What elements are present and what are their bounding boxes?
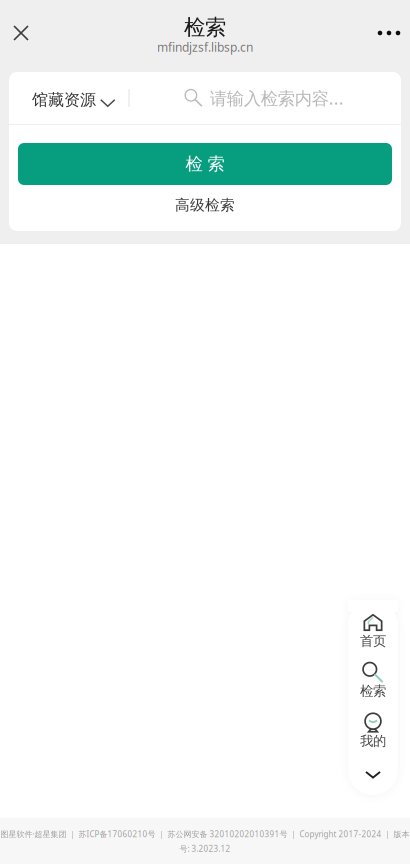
button[interactable]: 高级检索 <box>9 190 401 220</box>
staticText: 高级检索 <box>175 196 235 214</box>
staticText: 首页 <box>360 633 386 649</box>
staticText: 图星软件·超星集团 ｜ 苏ICP备17060210号 ｜ 苏公网安备 32010… <box>0 829 409 839</box>
staticText: 号: 3.2023.12 <box>179 843 230 854</box>
button[interactable]: 检索 <box>348 662 398 712</box>
staticText: 馆藏资源 <box>32 90 96 110</box>
button[interactable]: More options <box>368 13 410 53</box>
button[interactable]: 检 索 <box>18 143 392 185</box>
staticText: 请输入检索内容... <box>210 86 344 109</box>
staticText: 检 索 <box>185 153 224 175</box>
staticText: mfindjzsf.libsp.cn <box>157 39 253 55</box>
button[interactable]: Close <box>0 13 42 53</box>
staticText: 我的 <box>360 733 386 749</box>
button[interactable]: 馆藏资源 <box>9 72 128 124</box>
staticText: 检索 <box>184 14 226 41</box>
button[interactable]: 我的 <box>348 712 398 762</box>
button[interactable]: 首页 <box>348 612 398 662</box>
button[interactable]: 请输入检索内容... <box>129 72 401 124</box>
button[interactable]: Collapse navigation <box>348 762 398 795</box>
staticText: 检索 <box>360 683 386 699</box>
